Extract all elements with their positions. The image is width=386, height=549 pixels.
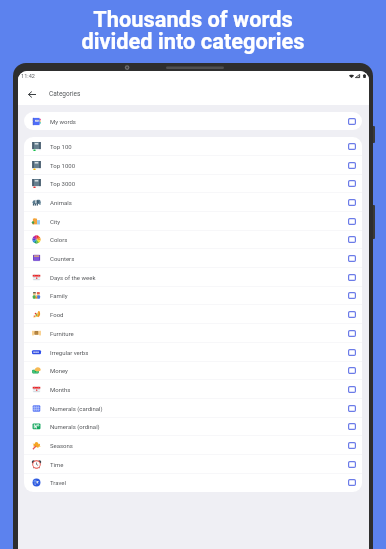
staticText: Thousands of words divided into categori… <box>0 7 386 55</box>
button[interactable]: Money <box>24 361 362 380</box>
staticText: Numerals (cardinal) <box>50 405 103 412</box>
button[interactable]: Food <box>24 305 362 324</box>
staticText: Food <box>50 311 64 318</box>
staticText: Seasons <box>50 442 73 449</box>
staticText: Months <box>50 386 71 393</box>
button[interactable]: Family <box>24 286 362 305</box>
staticText: My words <box>50 118 76 125</box>
button[interactable]: Back <box>21 83 43 105</box>
staticText: Days of the week <box>50 274 96 281</box>
button[interactable]: Numerals (ordinal) <box>24 417 362 436</box>
button[interactable]: Travel <box>24 473 362 492</box>
staticText: Animals <box>50 199 72 206</box>
button[interactable]: Numerals (cardinal) <box>24 399 362 418</box>
staticText: Furniture <box>50 330 74 337</box>
staticText: Top 1000 <box>50 162 76 169</box>
staticText: Money <box>50 367 68 374</box>
staticText: Irregular verbs <box>50 349 89 356</box>
staticText: Family <box>50 292 68 299</box>
button[interactable]: Colors <box>24 230 362 249</box>
button[interactable]: Top 100 <box>24 137 362 156</box>
staticText: Top 100 <box>50 143 72 150</box>
button[interactable]: City <box>24 212 362 231</box>
staticText: Numerals (ordinal) <box>50 423 100 430</box>
staticText: Time <box>50 461 64 468</box>
staticText: Colors <box>50 236 68 243</box>
button[interactable]: My words <box>24 112 362 130</box>
button[interactable]: Top 3000 <box>24 174 362 193</box>
button[interactable]: Irregular verbs <box>24 343 362 362</box>
button[interactable]: Top 1000 <box>24 156 362 175</box>
button[interactable]: Time <box>24 455 362 474</box>
staticText: Top 3000 <box>50 180 76 187</box>
button[interactable]: Animals <box>24 193 362 212</box>
button[interactable]: Seasons <box>24 436 362 455</box>
button[interactable]: Counters <box>24 249 362 268</box>
button[interactable]: Furniture <box>24 324 362 343</box>
staticText: 11:42 <box>21 73 35 80</box>
staticText: Categories <box>49 90 81 98</box>
button[interactable]: Months <box>24 380 362 399</box>
staticText: City <box>50 218 61 225</box>
button[interactable]: Days of the week <box>24 268 362 287</box>
staticText: Counters <box>50 255 75 262</box>
staticText: Travel <box>50 479 67 486</box>
